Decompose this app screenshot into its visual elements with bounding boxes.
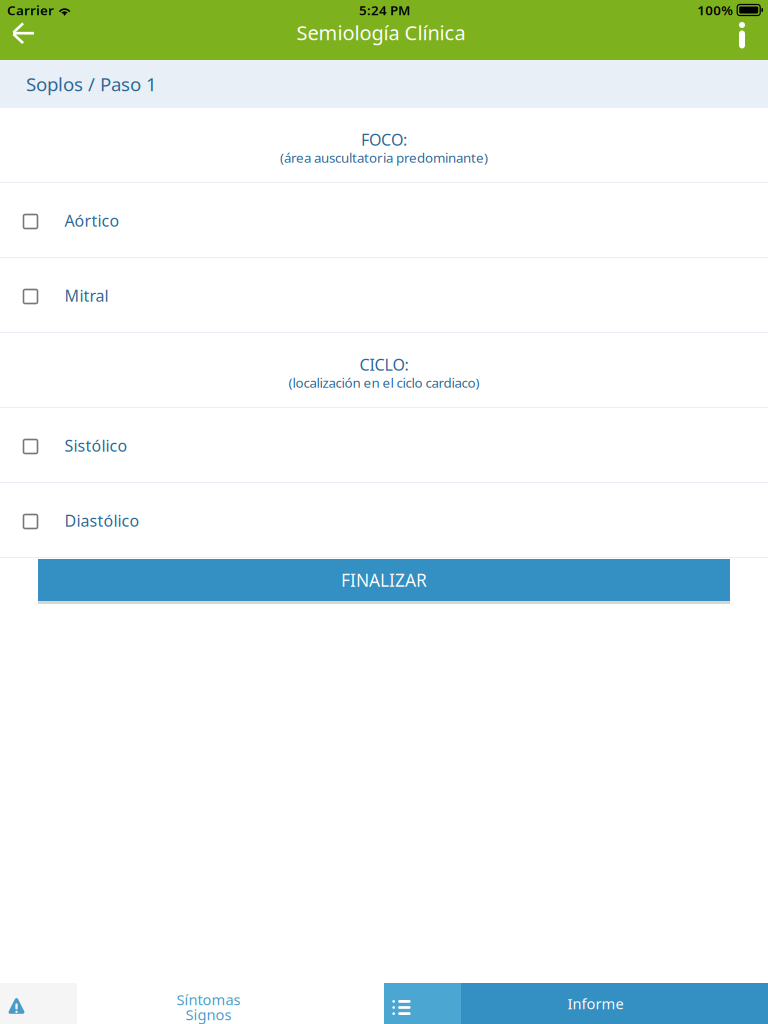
button[interactable]: Diastólico (0, 483, 768, 558)
button[interactable]: Sistólico (0, 408, 768, 483)
staticText: Informe (567, 994, 623, 1013)
staticText: Soplos / Paso 1 (26, 72, 157, 96)
staticText: Mitral (64, 285, 108, 306)
staticText: Diastólico (64, 510, 139, 531)
staticText: Sistólico (64, 435, 127, 456)
staticText: Signos (185, 1005, 231, 1024)
staticText: Carrier (7, 1, 54, 19)
button[interactable]: Informe (384, 983, 768, 1024)
staticText: 100% (697, 1, 733, 19)
staticText: Aórtico (64, 210, 119, 231)
button[interactable]: Back (0, 20, 46, 51)
staticText: FINALIZAR (341, 568, 427, 591)
staticText: Síntomas (176, 990, 240, 1009)
button[interactable]: Mitral (0, 258, 768, 333)
staticText: FOCO: (361, 129, 407, 150)
button[interactable]: Aórtico (0, 183, 768, 258)
staticText: (localización en el ciclo cardiaco) (288, 374, 479, 391)
staticText: 5:24 PM (359, 1, 410, 19)
button[interactable]: Information (716, 20, 768, 51)
button[interactable]: FINALIZAR (38, 559, 730, 601)
staticText: (área auscultatoria predominante) (280, 149, 488, 166)
staticText: CICLO: (359, 354, 408, 375)
button[interactable]: Síntomas (0, 983, 384, 1024)
staticText: Semiología Clínica (296, 19, 465, 46)
